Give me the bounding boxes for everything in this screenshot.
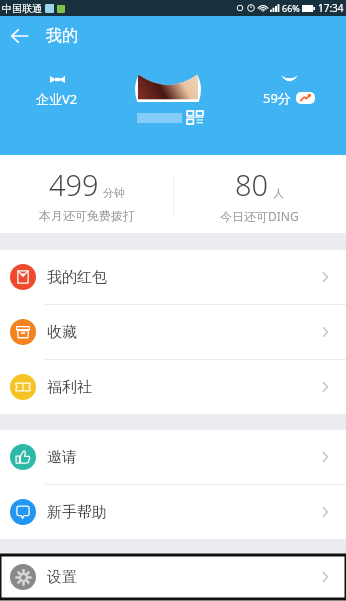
button[interactable]: 59分	[258, 75, 320, 107]
staticText: 80	[235, 165, 269, 204]
staticText: 中国联通	[2, 2, 42, 15]
staticText: 企业V2	[36, 90, 78, 108]
staticText: 分钟	[103, 186, 125, 200]
button[interactable]: QR code	[187, 111, 203, 124]
button[interactable]: 收藏	[0, 305, 346, 359]
staticText: 本月还可免费拨打	[39, 208, 135, 223]
button[interactable]: 80	[173, 155, 346, 233]
staticText: 今日还可DING	[220, 208, 299, 224]
button[interactable]: 企业V2	[26, 76, 88, 108]
staticText: 66%	[282, 2, 300, 14]
staticText: 设置	[47, 568, 77, 587]
staticText: 邀请	[47, 448, 77, 467]
button[interactable]: 邀请	[0, 430, 346, 484]
staticText: 59分	[263, 89, 291, 107]
button[interactable]: 设置	[0, 555, 346, 599]
button[interactable]: 499	[0, 155, 173, 233]
button[interactable]: 福利社	[0, 360, 346, 414]
staticText: 我的红包	[47, 268, 107, 287]
button[interactable]: 新手帮助	[0, 485, 346, 539]
staticText: 收藏	[47, 323, 77, 342]
button[interactable]: Avatar	[135, 57, 201, 102]
staticText: 新手帮助	[47, 503, 107, 522]
staticText: 17:34	[318, 1, 344, 15]
button[interactable]: 我的红包	[0, 250, 346, 304]
staticText: 人	[273, 186, 284, 200]
button[interactable]: Back	[0, 16, 38, 56]
staticText: 499	[49, 165, 99, 204]
staticText: 福利社	[47, 378, 92, 397]
staticText: 我的	[46, 26, 78, 46]
